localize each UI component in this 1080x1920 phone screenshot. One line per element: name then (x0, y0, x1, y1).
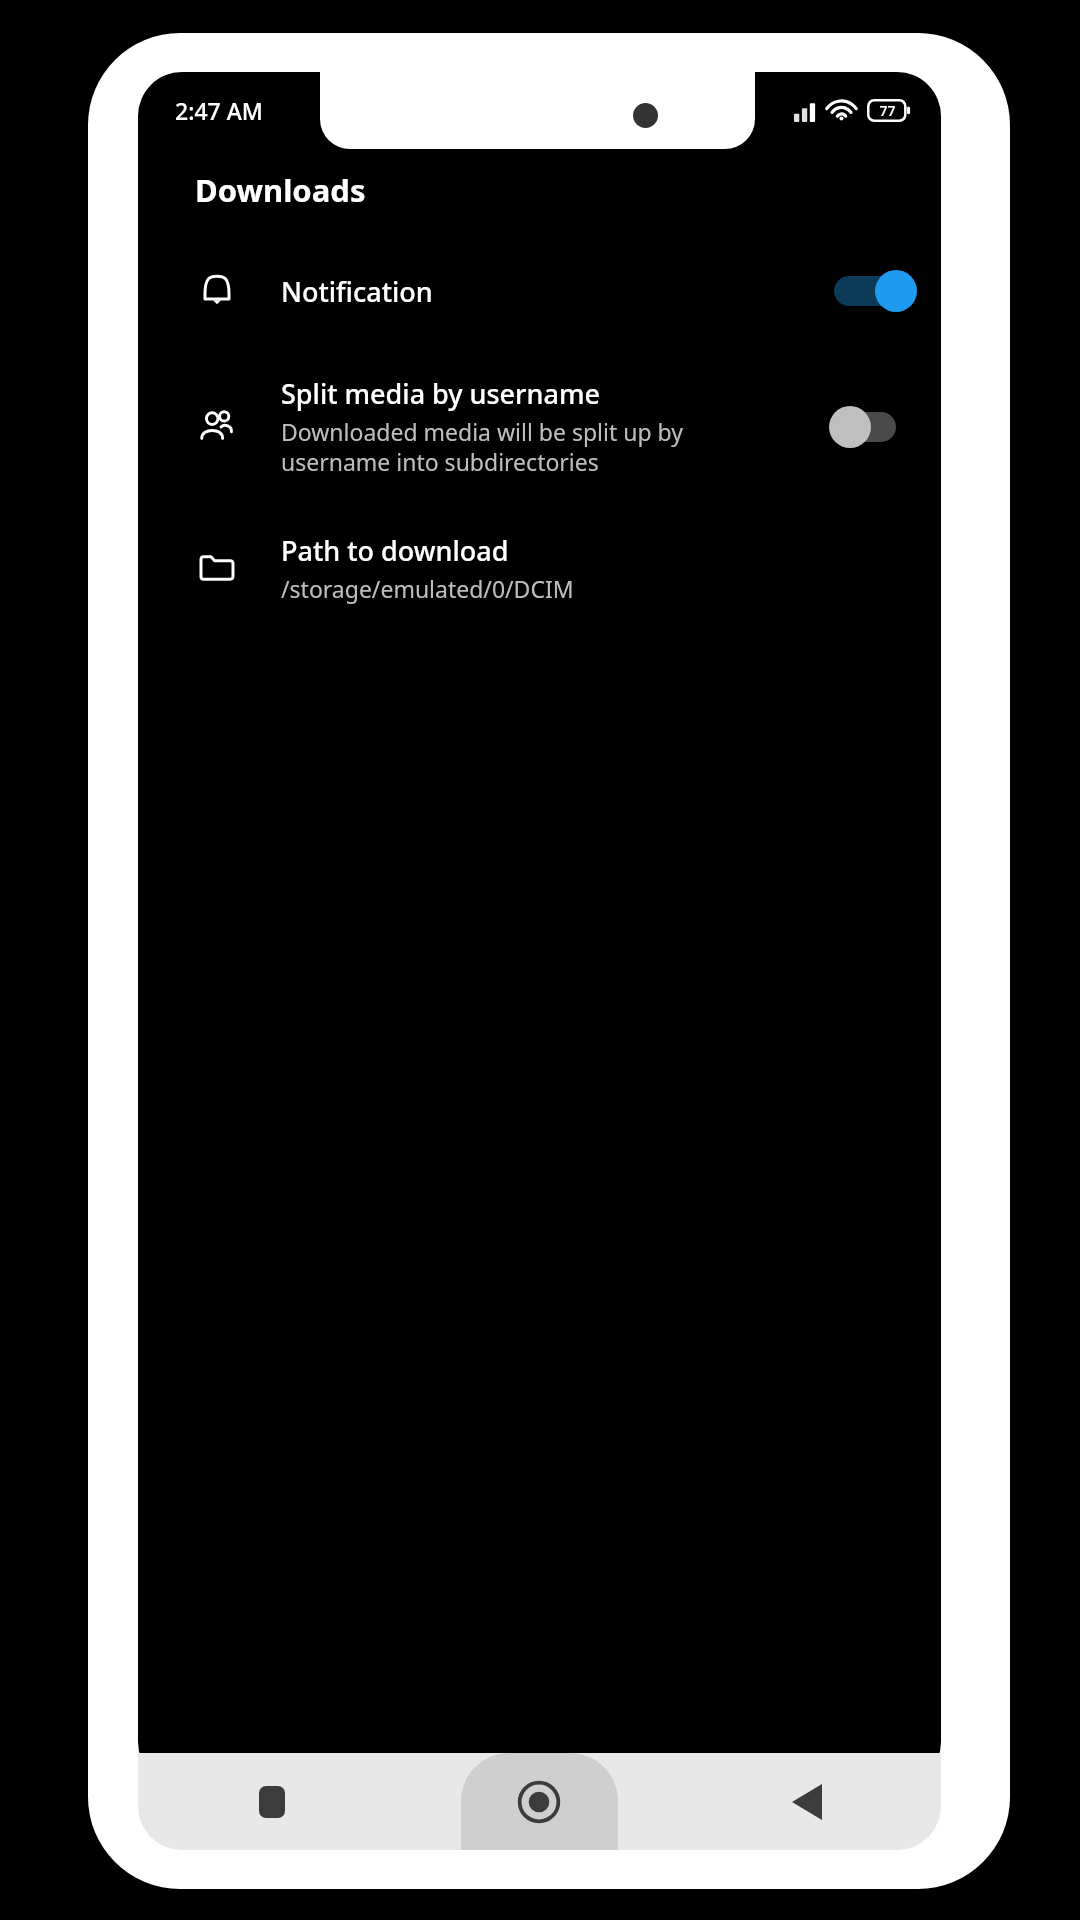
button[interactable]: Recents (138, 1753, 405, 1850)
button[interactable]: Split media by username (138, 369, 941, 484)
button[interactable]: Notification (138, 257, 941, 325)
button[interactable]: Home (405, 1753, 673, 1850)
staticText: Split media by username (281, 375, 600, 412)
button[interactable]: Notification toggle (823, 263, 907, 319)
staticText: Downloaded media will be split up by use… (281, 416, 683, 478)
button[interactable]: Split media toggle (823, 399, 907, 455)
staticText: 2:47 AM (175, 95, 263, 126)
staticText: Notification (281, 273, 433, 310)
button[interactable]: Back (673, 1753, 941, 1850)
staticText: Path to download (281, 532, 509, 569)
button[interactable]: Path to download (138, 526, 941, 610)
staticText: 77 (879, 101, 896, 120)
staticText: /storage/emulated/0/DCIM (281, 573, 574, 604)
staticText: Downloads (195, 169, 366, 211)
